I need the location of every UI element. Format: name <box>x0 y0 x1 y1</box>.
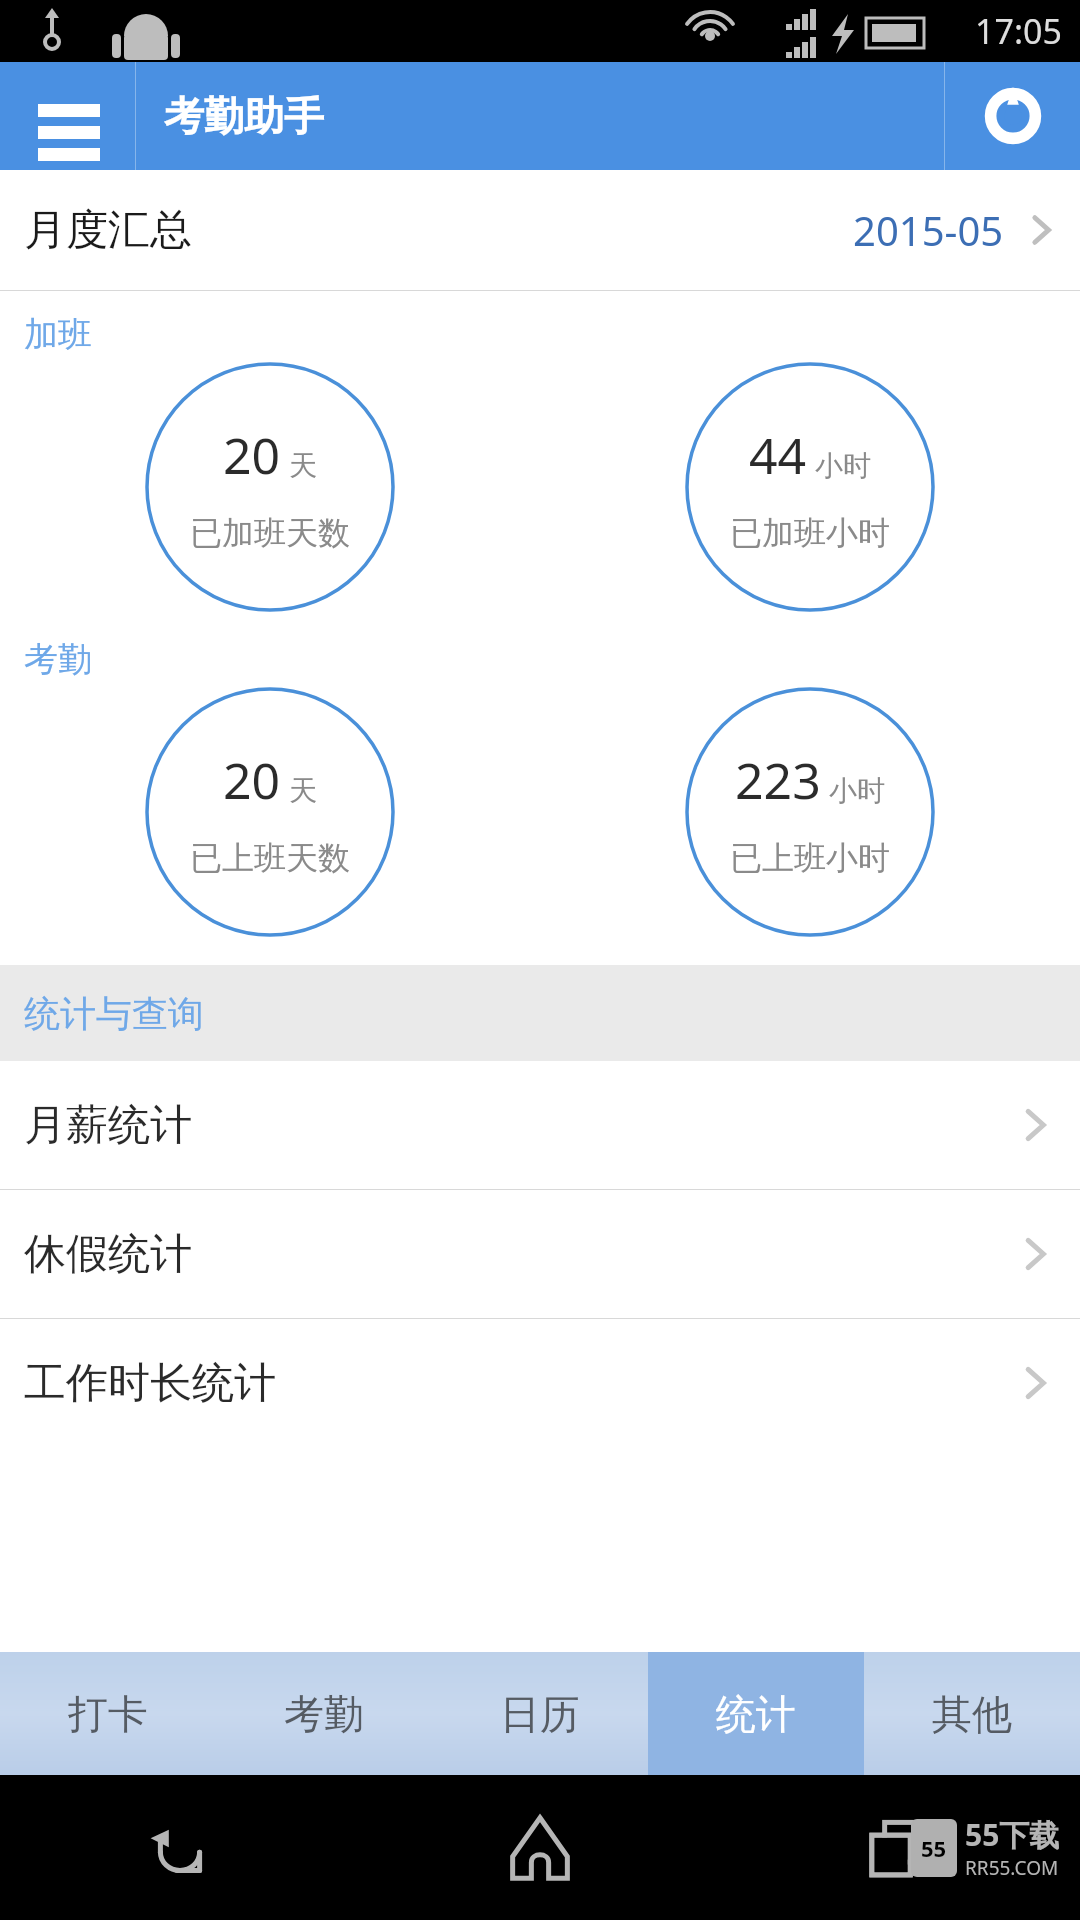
button[interactable]: 其他 <box>864 1652 1080 1775</box>
button[interactable]: Timer <box>945 62 1080 170</box>
staticText: 休假统计 <box>24 1228 192 1281</box>
staticText: 考勤助手 <box>164 91 324 141</box>
staticText: 统计 <box>716 1689 796 1739</box>
staticText: 日历 <box>500 1689 580 1739</box>
staticText: 55下载 <box>965 1814 1060 1855</box>
staticText: 44 <box>749 421 807 489</box>
staticText: 打卡 <box>68 1689 148 1739</box>
button[interactable]: 月薪统计 <box>0 1061 1080 1189</box>
button[interactable]: 月度汇总 <box>0 170 1080 290</box>
staticText: 其他 <box>932 1689 1012 1739</box>
button[interactable]: 日历 <box>432 1652 648 1775</box>
staticText: 工作时长统计 <box>24 1357 276 1410</box>
button[interactable]: 20 <box>145 687 395 937</box>
staticText: 已上班小时 <box>730 838 890 878</box>
staticText: 已加班小时 <box>730 513 890 553</box>
button[interactable]: Menu <box>0 62 135 170</box>
staticText: 已加班天数 <box>190 513 350 553</box>
button[interactable]: 工作时长统计 <box>0 1319 1080 1447</box>
button[interactable]: Back <box>0 1775 360 1920</box>
staticText: 月薪统计 <box>24 1099 192 1152</box>
button[interactable]: 统计 <box>648 1652 864 1775</box>
staticText: 223 <box>735 746 821 814</box>
button[interactable]: 44 <box>685 362 935 612</box>
staticText: 20 <box>223 421 281 489</box>
staticText: 月度汇总 <box>24 204 192 257</box>
staticText: 统计与查询 <box>24 991 204 1036</box>
staticText: 考勤 <box>24 638 92 681</box>
staticText: 2015-05 <box>853 203 1004 257</box>
staticText: 17:05 <box>975 8 1062 54</box>
staticText: 天 <box>289 448 317 483</box>
staticText: RR55.COM <box>965 1855 1059 1881</box>
button[interactable]: 休假统计 <box>0 1190 1080 1318</box>
staticText: 考勤 <box>284 1689 364 1739</box>
button[interactable]: 20 <box>145 362 395 612</box>
staticText: 已上班天数 <box>190 838 350 878</box>
button[interactable]: Home <box>360 1775 720 1920</box>
button[interactable]: 打卡 <box>0 1652 216 1775</box>
staticText: 55 <box>921 1833 947 1863</box>
staticText: 小时 <box>829 773 885 808</box>
staticText: 20 <box>223 746 281 814</box>
button[interactable]: 223 <box>685 687 935 937</box>
staticText: 天 <box>289 773 317 808</box>
button[interactable]: 考勤 <box>216 1652 432 1775</box>
staticText: 加班 <box>24 313 92 356</box>
button[interactable]: Recent apps <box>720 1775 1080 1920</box>
staticText: 小时 <box>815 448 871 483</box>
